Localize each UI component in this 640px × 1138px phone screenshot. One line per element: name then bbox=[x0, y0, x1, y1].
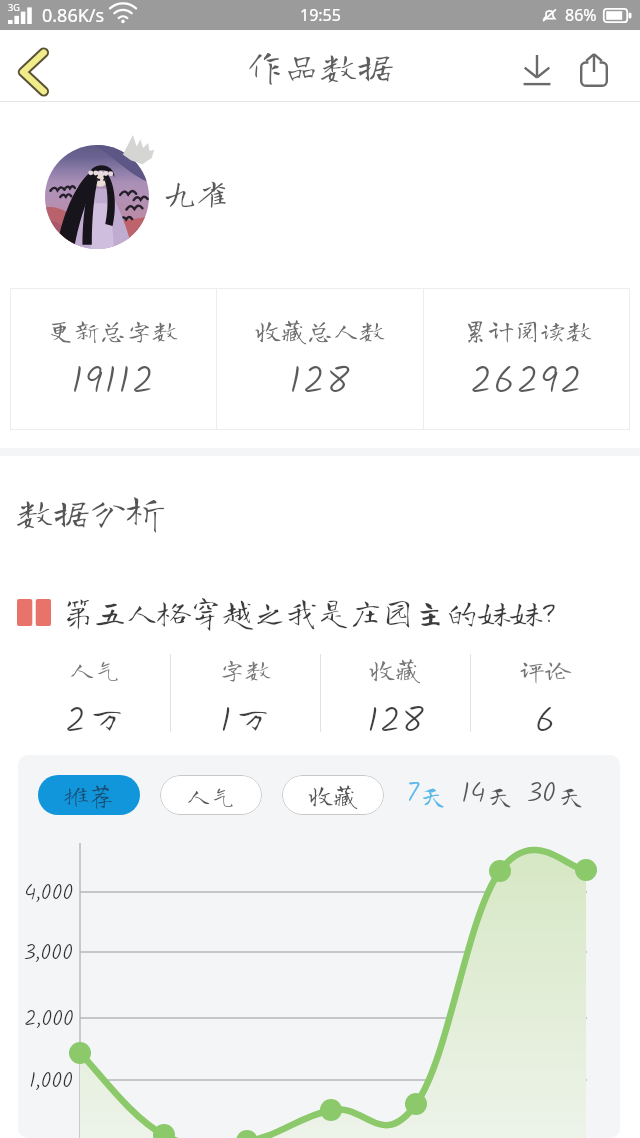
staticText: 19:55 bbox=[300, 4, 341, 26]
button[interactable]: 收藏总人数 bbox=[217, 288, 423, 430]
staticText: 天 bbox=[558, 782, 585, 809]
staticText: 128 bbox=[367, 694, 425, 738]
staticText: 2,000 bbox=[24, 1002, 74, 1037]
staticText: 6 bbox=[535, 694, 557, 738]
button[interactable]: 更新总字数 bbox=[10, 288, 216, 430]
staticText: 推荐 bbox=[64, 783, 115, 808]
button[interactable]: Avatar bbox=[45, 145, 149, 249]
button[interactable]: Share bbox=[566, 37, 622, 93]
button[interactable]: 推荐 bbox=[38, 775, 140, 815]
button[interactable]: 人气 bbox=[160, 775, 262, 815]
button[interactable]: 累计阅读数 bbox=[424, 288, 630, 430]
staticText: 更新总字数 bbox=[48, 317, 179, 343]
staticText: 128 bbox=[289, 353, 351, 414]
button[interactable]: Download bbox=[509, 37, 565, 93]
staticText: 30 bbox=[526, 772, 557, 817]
staticText: 收藏总人数 bbox=[255, 317, 386, 343]
staticText: 14 bbox=[461, 772, 486, 817]
staticText: 万 bbox=[89, 700, 126, 736]
staticText: 1,000 bbox=[29, 1064, 74, 1099]
staticText: 天 bbox=[420, 782, 447, 809]
staticText: 字数 bbox=[219, 656, 272, 682]
staticText: 2 bbox=[65, 694, 86, 738]
button[interactable]: 7 bbox=[406, 772, 447, 817]
staticText: 收藏 bbox=[369, 656, 422, 682]
staticText: 收藏 bbox=[308, 783, 359, 808]
staticText: 累计阅读数 bbox=[462, 317, 593, 343]
staticText: 4,000 bbox=[24, 876, 74, 911]
staticText: 天 bbox=[487, 782, 514, 809]
staticText: 3G bbox=[8, 1, 20, 13]
button[interactable]: 14 bbox=[461, 772, 514, 817]
staticText: 7 bbox=[406, 772, 419, 817]
staticText: 评论 bbox=[519, 656, 572, 682]
staticText: 第五人格穿越之我是庄园主的妹妹? bbox=[62, 596, 554, 628]
staticText: 3,000 bbox=[23, 936, 74, 971]
button[interactable]: 字数 bbox=[171, 648, 320, 738]
button[interactable]: 收藏 bbox=[282, 775, 384, 815]
button[interactable]: 30 bbox=[526, 772, 585, 817]
button[interactable]: 人气 bbox=[20, 648, 170, 738]
staticText: 作品数据 bbox=[246, 47, 394, 84]
staticText: 19112 bbox=[71, 353, 156, 414]
staticText: 0.86K/s bbox=[42, 3, 105, 28]
staticText: 人气 bbox=[186, 783, 237, 808]
staticText: 数据分析 bbox=[16, 493, 164, 530]
button[interactable]: Back bbox=[0, 36, 62, 98]
staticText: 1 bbox=[220, 694, 232, 738]
button[interactable]: 评论 bbox=[471, 648, 620, 738]
staticText: 九雀 bbox=[164, 176, 229, 208]
button[interactable]: 收藏 bbox=[321, 648, 470, 738]
staticText: 26292 bbox=[470, 353, 584, 414]
staticText: 人气 bbox=[69, 656, 122, 682]
staticText: 万 bbox=[235, 700, 272, 736]
staticText: 86% bbox=[565, 4, 597, 26]
